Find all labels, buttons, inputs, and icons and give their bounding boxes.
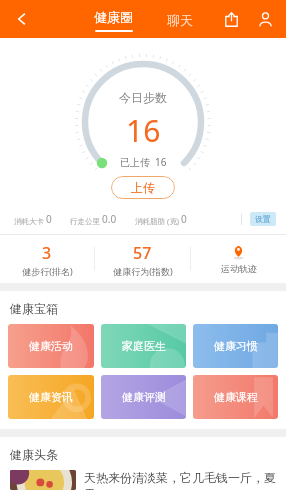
staticText: 设置	[255, 214, 271, 224]
staticText: 天热来份清淡菜，它几毛钱一斤，夏天	[84, 470, 276, 490]
button[interactable]: 健康评测	[101, 375, 186, 419]
button[interactable]: 聊天	[161, 10, 199, 30]
staticText: 0	[46, 212, 52, 226]
staticText: 健康头条	[10, 447, 58, 462]
staticText: 运动轨迹	[221, 263, 257, 274]
button[interactable]: 57	[95, 238, 190, 281]
staticText: 健康习惯	[214, 339, 258, 353]
staticText: 消耗大卡	[14, 217, 44, 226]
button[interactable]: Share	[216, 4, 246, 34]
staticText: 聊天	[167, 12, 193, 28]
staticText: 16	[126, 110, 161, 151]
button[interactable]: 上传	[111, 176, 175, 199]
button[interactable]: 家庭医生	[101, 324, 186, 368]
staticText: 16	[155, 155, 167, 169]
button[interactable]: Profile	[250, 4, 280, 34]
button[interactable]: 健康习惯	[193, 324, 278, 368]
button[interactable]: 健康圈	[88, 7, 139, 27]
staticText: 健康活动	[29, 339, 73, 353]
button[interactable]: 天热来份清淡菜，它几毛钱一斤，夏天	[0, 470, 286, 500]
button[interactable]: 健康课程	[193, 375, 278, 419]
staticText: 健康资讯	[29, 390, 73, 404]
staticText: 家庭医生	[122, 339, 166, 353]
staticText: 消耗脂肪 (克)	[135, 216, 179, 226]
button[interactable]: 健康资讯	[8, 375, 94, 419]
staticText: 3	[42, 242, 52, 264]
staticText: 行走公里	[70, 217, 100, 226]
button[interactable]: Back	[6, 3, 38, 35]
button[interactable]: 健康活动	[8, 324, 94, 368]
staticText: 健康课程	[214, 390, 258, 404]
staticText: 健康圈	[94, 9, 133, 25]
staticText: 健步行(排名)	[22, 265, 73, 277]
staticText: 上传	[131, 180, 155, 195]
staticText: 健康评测	[122, 390, 166, 404]
staticText: 0	[181, 212, 187, 226]
staticText: 健康宝箱	[10, 301, 58, 316]
button[interactable]: 运动轨迹	[191, 241, 286, 278]
staticText: 今日步数	[119, 90, 167, 105]
staticText: 健康行为(指数)	[113, 265, 173, 277]
staticText: 57	[133, 242, 152, 264]
button[interactable]: 设置	[250, 212, 276, 226]
staticText: 0.0	[102, 212, 117, 226]
button[interactable]: 3	[0, 238, 94, 281]
staticText: 已上传	[120, 156, 150, 169]
